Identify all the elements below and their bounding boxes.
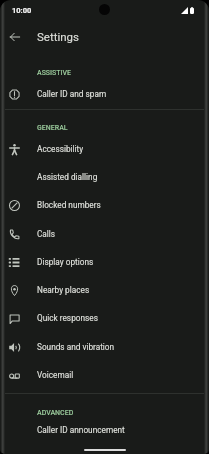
- staticText: ASSISTIVE: [37, 67, 72, 76]
- staticText: GENERAL: [37, 122, 68, 131]
- button[interactable]: Sounds and vibration: [0, 333, 209, 361]
- staticText: Nearby places: [37, 285, 90, 295]
- button[interactable]: Calls: [0, 220, 209, 248]
- staticText: Caller ID and spam: [37, 89, 107, 99]
- button[interactable]: Caller ID and spam: [0, 80, 209, 108]
- staticText: Settings: [37, 30, 79, 43]
- button[interactable]: Blocked numbers: [0, 191, 209, 219]
- button[interactable]: Back: [2, 24, 28, 50]
- button[interactable]: Display options: [0, 248, 209, 276]
- staticText: Accessibility: [37, 144, 84, 154]
- button[interactable]: Quick responses: [0, 304, 209, 332]
- staticText: Voicemail: [37, 370, 74, 380]
- staticText: Assisted dialling: [37, 172, 98, 182]
- staticText: Quick responses: [37, 313, 98, 323]
- staticText: Display options: [37, 257, 94, 267]
- staticText: 10:00: [12, 6, 32, 15]
- staticText: Sounds and vibration: [37, 342, 115, 352]
- button[interactable]: Voicemail: [0, 361, 209, 389]
- staticText: Caller ID announcement: [37, 425, 125, 435]
- button[interactable]: Accessibility: [0, 135, 209, 163]
- button[interactable]: Caller ID announcement: [0, 416, 209, 444]
- staticText: Calls: [37, 229, 56, 239]
- button[interactable]: Nearby places: [0, 276, 209, 304]
- button[interactable]: Assisted dialling: [0, 163, 209, 191]
- staticText: Blocked numbers: [37, 200, 101, 210]
- staticText: ADVANCED: [37, 407, 74, 416]
